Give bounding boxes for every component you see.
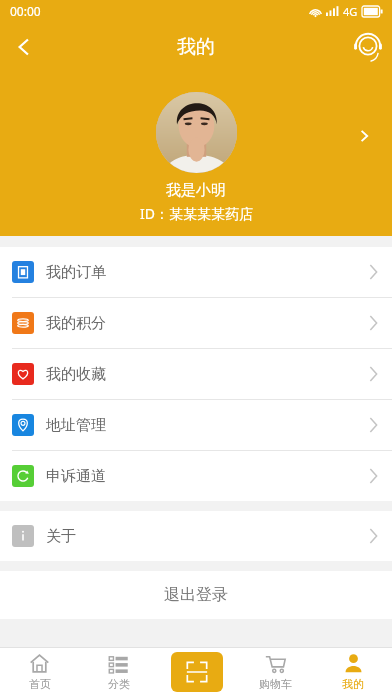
staticText: 分类 <box>108 677 130 691</box>
staticText: 我的收藏 <box>46 365 106 384</box>
staticText: 退出登录 <box>164 585 228 605</box>
button[interactable]: Profile photo <box>156 92 237 173</box>
button[interactable]: Customer service <box>344 23 392 71</box>
staticText: 00:00 <box>10 3 41 19</box>
button[interactable]: 我的 <box>314 648 392 696</box>
staticText: 4G <box>343 4 358 19</box>
button[interactable]: 首页 <box>0 648 79 696</box>
button[interactable]: 购物车 <box>236 648 314 696</box>
button[interactable]: Scan <box>158 648 236 696</box>
staticText: 购物车 <box>259 677 292 691</box>
staticText: 我的订单 <box>46 263 106 282</box>
staticText: 地址管理 <box>46 416 106 435</box>
staticText: 关于 <box>46 527 76 546</box>
button[interactable]: 我的收藏 <box>0 349 392 399</box>
button[interactable]: 退出登录 <box>0 571 392 619</box>
staticText: 我的 <box>342 677 364 691</box>
button[interactable]: 申诉通道 <box>0 451 392 501</box>
staticText: 我是小明 <box>166 181 226 200</box>
staticText: 申诉通道 <box>46 467 106 486</box>
staticText: ID：某某某某药店 <box>140 204 253 223</box>
button[interactable]: Back <box>0 23 48 71</box>
button[interactable]: 我的订单 <box>0 247 392 297</box>
staticText: 我的 <box>177 35 215 59</box>
staticText: 我的积分 <box>46 314 106 333</box>
button[interactable]: 我的积分 <box>0 298 392 348</box>
button[interactable]: 关于 <box>0 511 392 561</box>
button[interactable]: 分类 <box>79 648 158 696</box>
staticText: 首页 <box>29 677 51 691</box>
button[interactable]: Profile detail <box>344 116 384 156</box>
button[interactable]: 地址管理 <box>0 400 392 450</box>
